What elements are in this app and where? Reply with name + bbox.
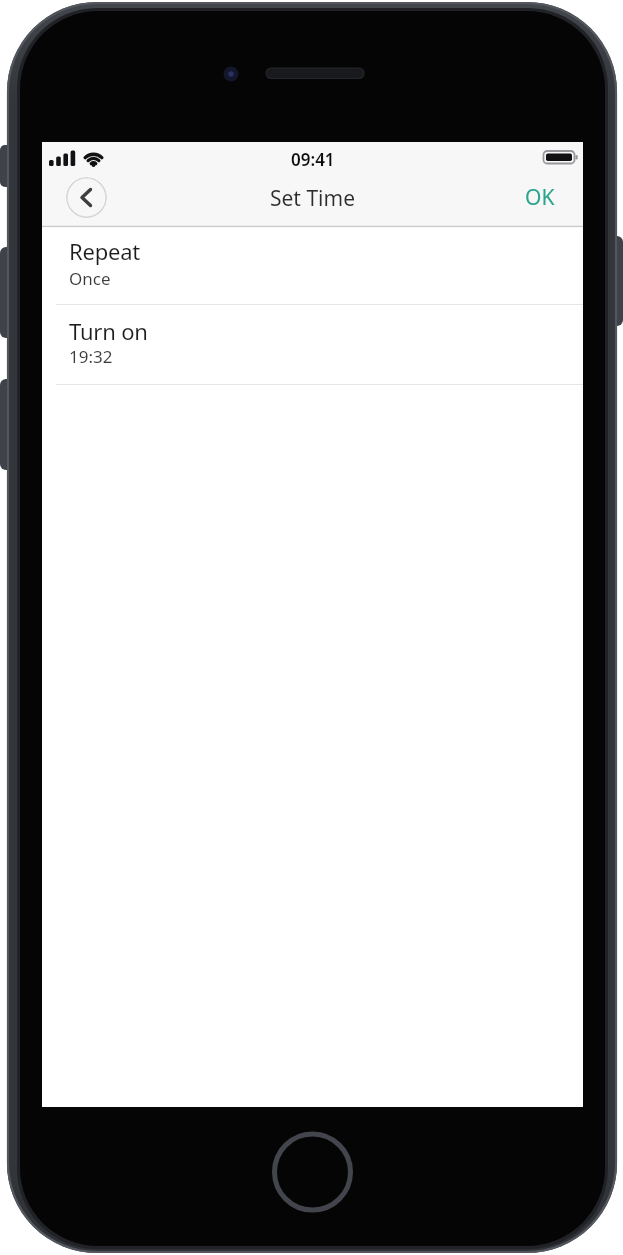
staticText: Once [69, 267, 111, 290]
button[interactable] [66, 177, 107, 218]
staticText: OK [525, 183, 555, 212]
staticText: 09:41 [291, 148, 335, 171]
button[interactable]: OK [517, 178, 563, 216]
button[interactable]: Turn on [42, 305, 583, 383]
staticText: Repeat [69, 236, 141, 266]
staticText: 19:32 [69, 345, 113, 368]
staticText: Turn on [69, 316, 148, 346]
button[interactable]: Repeat [42, 227, 583, 304]
staticText: Set Time [270, 184, 355, 213]
